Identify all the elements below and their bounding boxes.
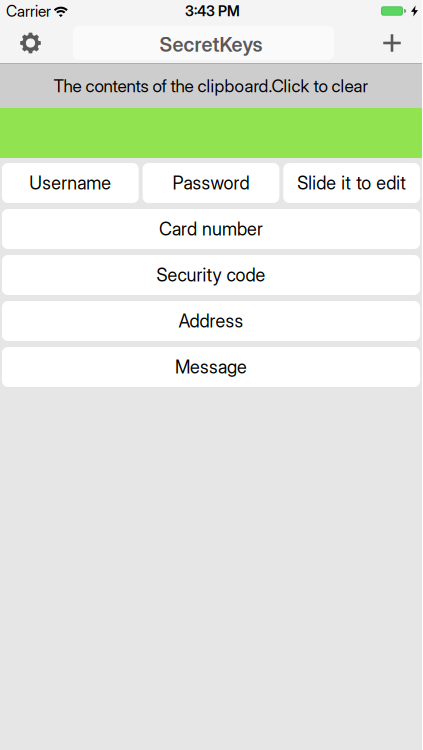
staticText: Message bbox=[175, 356, 247, 378]
button[interactable]: Card number bbox=[2, 209, 420, 249]
button[interactable]: Username bbox=[2, 163, 139, 203]
staticText: Slide it to edit bbox=[297, 172, 406, 194]
staticText: Carrier bbox=[6, 2, 51, 20]
staticText: Password bbox=[172, 172, 249, 194]
staticText: The contents of the clipboard.Click to c… bbox=[53, 76, 368, 96]
staticText: Security code bbox=[156, 264, 265, 286]
staticText: SecretKeys bbox=[159, 33, 262, 56]
button[interactable]: The contents of the clipboard.Click to c… bbox=[0, 64, 422, 108]
button[interactable]: Security code bbox=[2, 255, 420, 295]
staticText: Card number bbox=[159, 218, 263, 240]
button[interactable]: Add bbox=[371, 22, 422, 64]
button[interactable]: Settings bbox=[0, 21, 53, 64]
button[interactable]: Message bbox=[2, 347, 420, 387]
staticText: Username bbox=[29, 172, 111, 194]
staticText: Address bbox=[178, 310, 243, 332]
button[interactable]: Slide it to edit bbox=[283, 163, 420, 203]
button[interactable]: Password bbox=[143, 163, 279, 203]
staticText: 3:43 PM bbox=[185, 2, 240, 20]
button[interactable]: Address bbox=[2, 301, 420, 341]
